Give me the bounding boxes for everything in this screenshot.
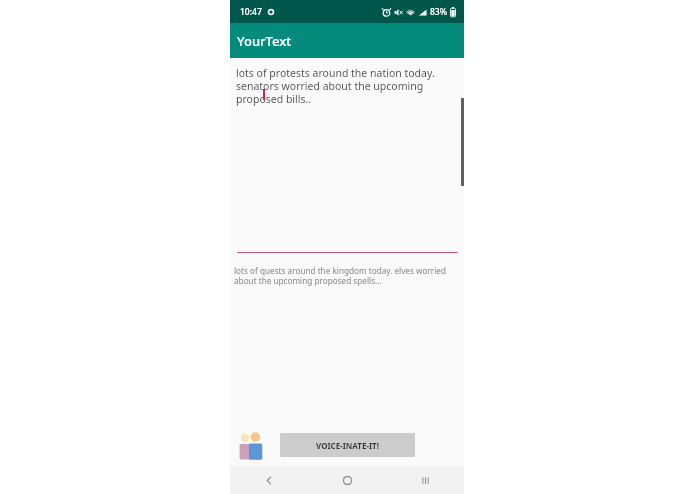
button[interactable]: Recent apps (386, 466, 464, 494)
staticText: 83% (430, 6, 447, 18)
button[interactable]: VOICE-INATE-IT! (280, 433, 415, 457)
staticText: YourText (237, 32, 292, 50)
staticText: lots of quests around the kingdom today.… (234, 265, 458, 287)
staticText: lots of protests around the nation today… (236, 66, 456, 106)
button[interactable]: Back (230, 466, 308, 494)
button[interactable]: Home (308, 466, 386, 494)
button[interactable]: Contacts (236, 427, 272, 463)
staticText: VOICE-INATE-IT! (316, 440, 379, 451)
staticText: 10:47 (240, 6, 262, 18)
